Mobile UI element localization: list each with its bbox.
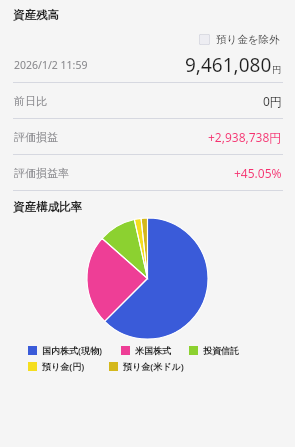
- staticText: 評価損益率: [14, 166, 69, 180]
- staticText: 預り金(米ドル): [123, 360, 184, 372]
- staticText: 預り金を除外: [216, 33, 280, 46]
- button[interactable]: 預り金(米ドル): [109, 360, 184, 372]
- staticText: +2,938,738円: [208, 129, 282, 145]
- staticText: +45.05%: [234, 165, 282, 181]
- staticText: 円: [272, 64, 282, 76]
- staticText: 評価損益: [14, 130, 58, 144]
- staticText: 米国株式: [135, 345, 171, 356]
- staticText: 預り金(円): [42, 360, 85, 372]
- button[interactable]: 預り金を除外: [197, 31, 282, 48]
- button[interactable]: 国内株式(現物): [28, 344, 103, 356]
- staticText: 資産残高: [13, 8, 59, 22]
- button[interactable]: 評価損益: [0, 119, 295, 154]
- button[interactable]: 預り金(円): [28, 360, 85, 372]
- staticText: 9,461,080: [185, 52, 272, 78]
- staticText: 資産構成比率: [13, 200, 82, 214]
- button[interactable]: 評価損益率: [0, 155, 295, 190]
- staticText: 2026/1/2 11:59: [14, 58, 88, 72]
- staticText: 投資信託: [203, 345, 239, 356]
- button[interactable]: 前日比: [0, 83, 295, 118]
- button[interactable]: 米国株式: [121, 345, 171, 356]
- staticText: 0円: [263, 93, 282, 109]
- button[interactable]: 投資信託: [189, 345, 239, 356]
- staticText: 前日比: [14, 94, 47, 108]
- staticText: 国内株式(現物): [42, 344, 103, 356]
